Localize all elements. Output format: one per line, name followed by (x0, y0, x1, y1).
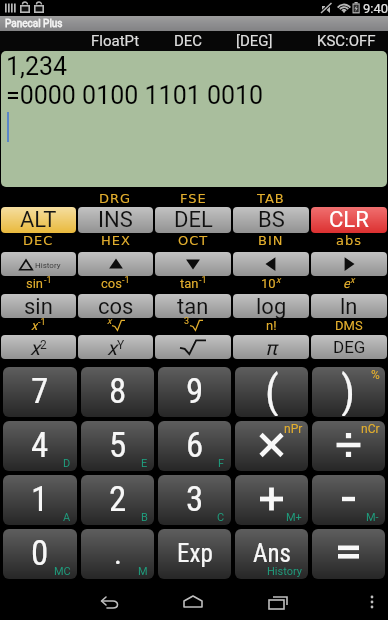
button[interactable]: DEL (155, 207, 231, 233)
staticText: sin (24, 294, 53, 318)
staticText: -1 (122, 275, 130, 286)
staticText: ) (341, 367, 356, 416)
staticText: M (138, 565, 148, 578)
button[interactable]: x squared (1, 335, 76, 359)
staticText: E (141, 457, 148, 470)
staticText: sin (26, 276, 44, 290)
button[interactable]: Minus (312, 475, 385, 525)
button[interactable]: ln (311, 294, 387, 318)
button[interactable]: INS (78, 207, 153, 233)
button[interactable]: FloatPt (91, 32, 140, 50)
button[interactable]: Decimal point (81, 529, 154, 579)
button[interactable]: Plus (235, 475, 308, 525)
button[interactable]: ALT (1, 207, 76, 233)
staticText: MC (54, 565, 71, 578)
staticText: M+ (286, 511, 302, 524)
button[interactable]: KSC:OFF (317, 32, 376, 50)
button[interactable]: x to the y (78, 335, 153, 359)
staticText: DRG (99, 191, 132, 205)
button[interactable]: BS (233, 207, 309, 233)
staticText: M- (366, 511, 379, 524)
staticText: DEC (23, 233, 54, 247)
staticText: DMS (335, 318, 363, 332)
button[interactable]: Home (175, 584, 211, 620)
staticText: x (30, 336, 40, 359)
button[interactable]: 0 (3, 529, 77, 579)
button[interactable]: 6 (158, 421, 231, 471)
button[interactable]: 8 (81, 367, 154, 417)
staticText: B (141, 511, 148, 524)
staticText: -1 (44, 275, 52, 286)
button[interactable]: Up (78, 252, 153, 276)
button[interactable]: tan (155, 294, 231, 318)
staticText: 5 (109, 425, 127, 466)
button[interactable]: ( (235, 367, 308, 417)
staticText: 9 (186, 371, 204, 412)
staticText: TAB (257, 191, 285, 205)
staticText: ( (265, 367, 279, 416)
button[interactable]: 3 (158, 475, 231, 525)
button[interactable]: Exp (158, 529, 231, 579)
staticText: CLR (329, 207, 369, 233)
button[interactable]: Divide (312, 421, 385, 471)
staticText: 8 (109, 371, 127, 412)
staticText: 3 (184, 316, 190, 327)
staticText: nPr (284, 422, 303, 436)
staticText: F (218, 457, 225, 470)
button[interactable]: Down (155, 252, 231, 276)
staticText: FSE (180, 191, 207, 205)
button[interactable]: History (1, 252, 76, 276)
button[interactable]: 2 (81, 475, 154, 525)
staticText: x (350, 275, 355, 286)
staticText: abs (336, 233, 362, 247)
button[interactable]: Equals (312, 529, 385, 579)
button[interactable]: 7 (3, 367, 77, 417)
staticText: Ans (253, 539, 291, 568)
staticText: 6 (186, 425, 204, 466)
button[interactable]: More options (360, 590, 384, 614)
staticText: tan (180, 276, 199, 290)
button[interactable]: Right (311, 252, 387, 276)
staticText: C (217, 511, 225, 524)
staticText: e (343, 276, 350, 290)
button[interactable]: cos (78, 294, 153, 318)
button[interactable]: Back (92, 584, 128, 620)
button[interactable]: [DEG] (236, 32, 273, 50)
button[interactable]: 5 (81, 421, 154, 471)
staticText: HEX (101, 233, 131, 247)
button[interactable]: 4 (3, 421, 77, 471)
button[interactable]: Ans (235, 529, 308, 579)
staticText: DEG (333, 337, 366, 357)
button[interactable]: 1,234 (1, 51, 387, 187)
button[interactable]: CLR (311, 207, 387, 233)
button[interactable]: DEC (174, 32, 203, 50)
staticText: 10 (261, 276, 276, 290)
button[interactable]: log (233, 294, 309, 318)
button[interactable]: Multiply (235, 421, 308, 471)
button[interactable]: DEG (311, 335, 387, 359)
staticText: 4 (31, 425, 49, 466)
button[interactable]: Recent apps (260, 584, 296, 620)
button[interactable]: ) (312, 367, 385, 417)
staticText: cos (98, 294, 134, 318)
staticText: 3 (186, 479, 204, 520)
staticText: INS (98, 207, 133, 233)
staticText: 2 (40, 338, 47, 352)
button[interactable]: sin (1, 294, 76, 318)
staticText: Y (117, 338, 125, 352)
staticText: 9:40 (363, 1, 388, 16)
staticText: History (267, 565, 302, 578)
staticText: Panecal Plus (5, 18, 63, 30)
button[interactable]: 1 (3, 475, 77, 525)
staticText: 2 (109, 479, 127, 520)
staticText: 7 (31, 371, 49, 412)
button[interactable]: Square root (155, 335, 231, 359)
staticText: DEL (174, 207, 213, 233)
button[interactable]: π (233, 335, 309, 359)
staticText: -1 (38, 317, 46, 328)
button[interactable]: 9 (158, 367, 231, 417)
staticText: BS (258, 207, 285, 233)
staticText: D (63, 457, 71, 470)
button[interactable]: Left (233, 252, 309, 276)
staticText: nCr (361, 422, 380, 436)
